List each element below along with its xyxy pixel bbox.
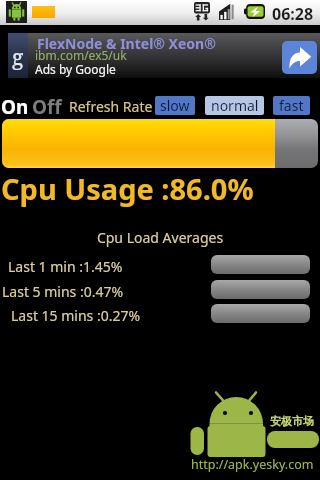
button[interactable]: Open advertisement [282, 41, 317, 74]
staticText: Last 15 mins :0.27% [11, 306, 141, 325]
staticText: Cpu Usage :86.0% [1, 169, 254, 208]
staticText: 安极市场 [270, 414, 314, 428]
staticText: Cpu Load Averages [0, 228, 320, 247]
button[interactable]: fast [273, 96, 310, 115]
staticText: fast [279, 96, 304, 115]
staticText: g [12, 43, 24, 72]
button[interactable]: Off [32, 94, 62, 120]
button[interactable]: slow [155, 96, 195, 115]
button[interactable]: On [1, 94, 29, 120]
staticText: 06:28 [272, 3, 314, 25]
staticText: slow [160, 96, 190, 115]
staticText: Last 5 mins :0.47% [2, 282, 124, 301]
button[interactable]: normal [205, 96, 264, 115]
staticText: http://apk.yesky.com [191, 456, 314, 473]
staticText: Refresh Rate [69, 97, 153, 116]
staticText: FlexNode & Intel® Xeon® [37, 34, 216, 53]
staticText: ibm.com/ex5/uk [35, 47, 127, 63]
staticText: Last 1 min :1.45% [8, 257, 123, 276]
button[interactable]: g [8, 33, 320, 78]
staticText: normal [211, 96, 259, 115]
staticText: Ads by Google [35, 61, 116, 77]
